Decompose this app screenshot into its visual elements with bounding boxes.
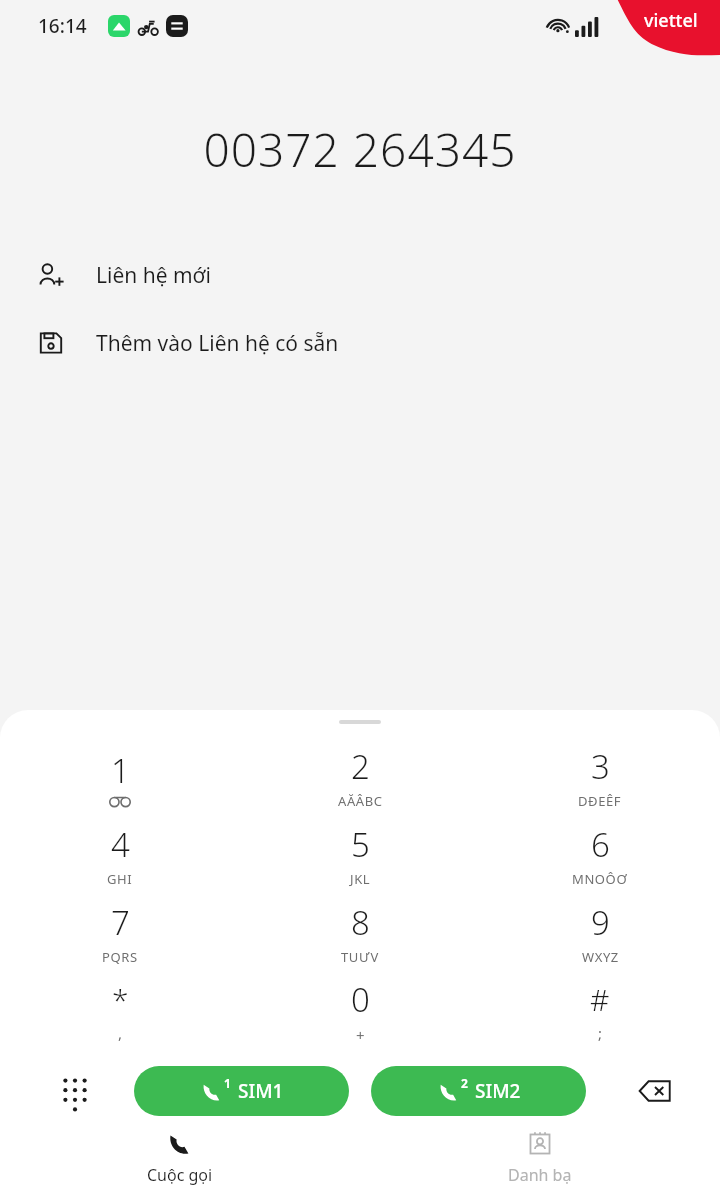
staticText: 1 — [111, 748, 130, 793]
staticText: Danh bạ — [508, 1164, 572, 1186]
staticText: ; — [598, 1023, 603, 1043]
button[interactable]: 4 — [0, 816, 240, 894]
staticText: 7 — [111, 900, 130, 945]
button[interactable]: 5 — [240, 816, 480, 894]
staticText: 6 — [591, 822, 610, 867]
button[interactable]: Cuộc gọi — [0, 1122, 360, 1194]
staticText: 16:14 — [38, 13, 87, 39]
staticText: Liên hệ mới — [96, 261, 211, 290]
staticText: , — [118, 1023, 123, 1043]
button[interactable]: Thêm vào Liên hệ có sẵn — [0, 321, 720, 365]
staticText: 4 — [111, 822, 130, 867]
button[interactable]: 7 — [0, 894, 240, 972]
button[interactable]: Xóa — [632, 1068, 678, 1114]
staticText: 8 — [351, 900, 370, 945]
button[interactable]: 2 — [371, 1066, 586, 1116]
staticText: 5 — [351, 822, 370, 867]
staticText: 3 — [591, 744, 610, 789]
button[interactable]: 1 — [134, 1066, 349, 1116]
button[interactable]: Liên hệ mới — [0, 253, 720, 297]
button[interactable]: 8 — [240, 894, 480, 972]
staticText: 1 — [224, 1075, 231, 1091]
staticText: DĐEÊF — [578, 792, 622, 810]
button[interactable]: 3 — [480, 738, 720, 816]
button[interactable]: Bàn phím — [52, 1068, 98, 1114]
staticText: AĂÂBC — [338, 792, 383, 810]
staticText: + — [356, 1025, 366, 1045]
staticText: TUƯV — [341, 948, 379, 966]
staticText: WXYZ — [582, 948, 619, 966]
staticText: 0 — [351, 977, 370, 1022]
button[interactable]: 0 — [240, 972, 480, 1050]
button[interactable]: 9 — [480, 894, 720, 972]
button[interactable]: * — [0, 972, 240, 1050]
staticText: * — [112, 979, 129, 1020]
staticText: viettel — [644, 8, 698, 33]
staticText: Cuộc gọi — [147, 1164, 213, 1186]
button[interactable]: 1 — [0, 738, 240, 816]
staticText: PQRS — [102, 948, 138, 966]
staticText: SIM2 — [475, 1078, 521, 1104]
staticText: 2 — [461, 1075, 468, 1091]
staticText: # — [590, 979, 610, 1020]
staticText: MNOÔƠ — [572, 870, 628, 888]
staticText: JKL — [350, 870, 371, 888]
staticText: 00372 264345 — [0, 118, 720, 181]
button[interactable]: # — [480, 972, 720, 1050]
staticText: Thêm vào Liên hệ có sẵn — [96, 329, 339, 358]
button[interactable]: 6 — [480, 816, 720, 894]
button[interactable]: Danh bạ — [360, 1122, 720, 1194]
button[interactable]: 2 — [240, 738, 480, 816]
staticText: SIM1 — [238, 1078, 284, 1104]
staticText: 2 — [351, 744, 370, 789]
staticText: 9 — [591, 900, 610, 945]
staticText: GHI — [107, 870, 133, 888]
